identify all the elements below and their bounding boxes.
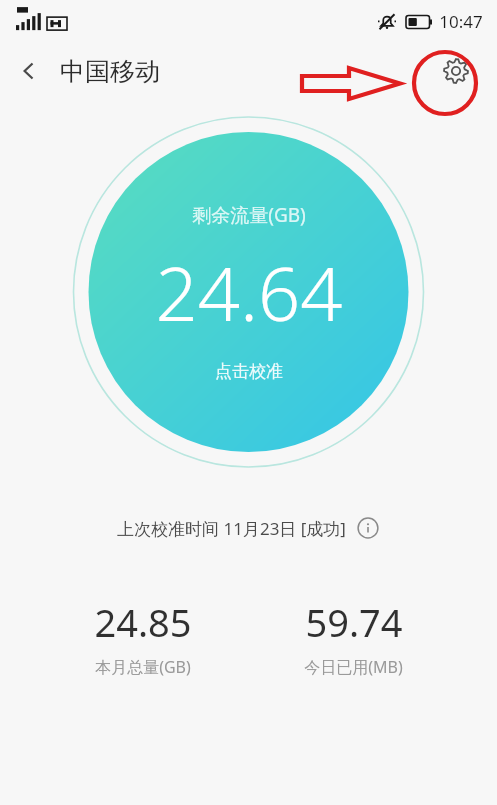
staticText: 24.85 xyxy=(94,596,192,648)
staticText: 本月总量(GB) xyxy=(95,656,191,678)
staticText: 中国移动 xyxy=(60,56,160,87)
button[interactable]: Settings xyxy=(435,50,477,92)
staticText: 今日已用(MB) xyxy=(304,656,403,678)
button[interactable]: 59.74 xyxy=(286,592,421,682)
staticText: 24.64 xyxy=(155,242,343,343)
staticText: 点击校准 xyxy=(215,361,283,382)
other: Info xyxy=(356,516,380,540)
staticText: 59.74 xyxy=(305,596,403,648)
staticText: 剩余流量(GB) xyxy=(192,202,306,228)
button[interactable]: 上次校准时间 11月23日 [成功] xyxy=(0,516,497,540)
button[interactable]: 剩余流量(GB) xyxy=(89,132,409,452)
button[interactable]: 24.85 xyxy=(76,592,210,682)
staticText: 10:47 xyxy=(439,10,483,33)
staticText: 上次校准时间 11月23日 [成功] xyxy=(117,517,346,540)
button[interactable]: Back xyxy=(0,54,48,88)
